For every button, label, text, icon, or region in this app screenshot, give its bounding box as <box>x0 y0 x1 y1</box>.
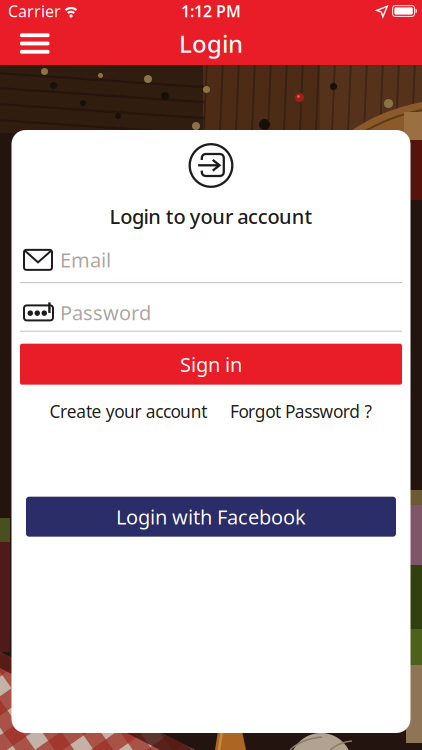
button[interactable]: Sign in <box>20 344 402 385</box>
button[interactable]: Create your account <box>49 400 207 423</box>
button[interactable]: Login with Facebook <box>26 497 396 537</box>
staticText: Login with Facebook <box>116 503 306 530</box>
staticText: Create your account <box>49 400 207 423</box>
staticText: 1:12 PM <box>181 0 241 22</box>
button[interactable]: Forgot Password ? <box>230 400 372 423</box>
staticText: Forgot Password ? <box>230 400 372 423</box>
staticText: Password <box>60 299 151 326</box>
button[interactable]: Menu <box>0 27 49 60</box>
staticText: Carrier <box>8 0 61 22</box>
staticText: Email <box>60 247 111 273</box>
staticText: Login <box>179 28 243 59</box>
staticText: Login to your account <box>109 203 312 230</box>
staticText: Sign in <box>180 351 242 377</box>
